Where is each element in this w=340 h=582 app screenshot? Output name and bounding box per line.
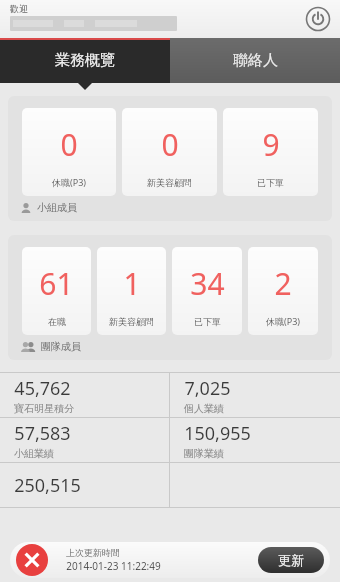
button[interactable]: 57,583 <box>0 418 169 462</box>
button[interactable]: 9 <box>223 108 318 196</box>
staticText: 250,515 <box>14 473 81 498</box>
button[interactable]: 更新 <box>258 547 324 573</box>
button[interactable]: Close <box>16 544 48 576</box>
button[interactable]: 業務概覽 <box>0 38 170 83</box>
staticText: 已下單 <box>194 316 221 327</box>
staticText: 0 <box>60 124 78 165</box>
staticText: 歡迎 <box>10 3 28 14</box>
staticText: 0 <box>161 124 179 165</box>
button[interactable]: 34 <box>172 247 242 335</box>
button[interactable]: 0 <box>22 108 116 196</box>
button[interactable]: 2 <box>248 247 318 335</box>
staticText: 34 <box>190 263 225 304</box>
staticText: 業務概覽 <box>55 51 115 70</box>
staticText: 2 <box>274 263 292 304</box>
staticText: 9 <box>262 124 280 165</box>
staticText: 寶石明星積分 <box>14 402 74 415</box>
staticText: 已下單 <box>257 177 284 188</box>
button[interactable]: 45,762 <box>0 373 169 417</box>
button[interactable]: 1 <box>97 247 166 335</box>
staticText: 45,762 <box>14 376 71 401</box>
button[interactable]: 250,515 <box>0 463 169 507</box>
button[interactable]: Logout <box>304 5 332 33</box>
staticText: 1 <box>123 263 141 304</box>
staticText: 個人業績 <box>184 402 224 415</box>
button[interactable]: 7,025 <box>170 373 340 417</box>
staticText: 小組成員 <box>37 201 77 214</box>
button[interactable]: 61 <box>22 247 91 335</box>
button[interactable]: 0 <box>122 108 217 196</box>
staticText: 150,955 <box>184 421 251 446</box>
staticText: 聯絡人 <box>233 51 278 70</box>
staticText: 團隊成員 <box>41 340 81 353</box>
staticText: 休職(P3) <box>266 315 300 327</box>
staticText: 小組業績 <box>14 447 54 460</box>
staticText: 7,025 <box>184 376 231 401</box>
staticText: 新美容顧問 <box>147 177 192 188</box>
staticText: 休職(P3) <box>52 176 86 188</box>
staticText: 新美容顧問 <box>109 316 154 327</box>
staticText: 團隊業績 <box>184 447 224 460</box>
button[interactable]: 150,955 <box>170 418 340 462</box>
staticText: 57,583 <box>14 421 71 446</box>
staticText: 2014-01-23 11:22:49 <box>66 559 161 573</box>
button[interactable]: 聯絡人 <box>170 38 340 83</box>
staticText: 在職 <box>48 316 66 327</box>
staticText: 上次更新時間 <box>66 547 120 558</box>
staticText: 更新 <box>278 552 304 568</box>
staticText: 61 <box>39 263 74 304</box>
